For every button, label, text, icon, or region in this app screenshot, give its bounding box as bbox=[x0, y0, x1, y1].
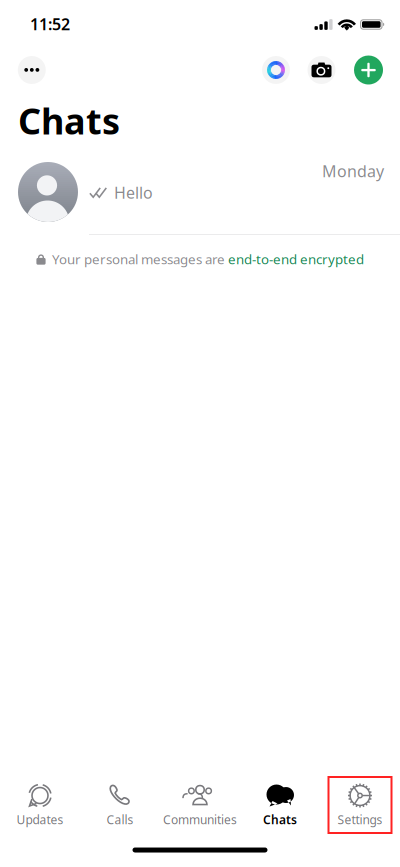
staticText: Your personal messages are bbox=[52, 250, 228, 268]
staticText: Monday bbox=[322, 160, 384, 182]
button[interactable]: Meta AI bbox=[259, 53, 293, 87]
staticText: end-to-end encrypted bbox=[228, 250, 364, 268]
button[interactable] bbox=[0, 145, 400, 234]
button[interactable]: Communities bbox=[160, 778, 240, 832]
staticText: 11:52 bbox=[30, 13, 70, 35]
button[interactable]: New chat bbox=[351, 53, 385, 87]
staticText: Updates bbox=[16, 811, 63, 827]
staticText: Chats bbox=[18, 97, 120, 144]
staticText: Settings bbox=[337, 811, 382, 827]
button[interactable]: Updates bbox=[0, 778, 80, 832]
staticText: Chats bbox=[263, 811, 297, 827]
staticText: Calls bbox=[106, 811, 133, 827]
button[interactable]: Calls bbox=[80, 778, 160, 832]
button[interactable]: Settings bbox=[320, 777, 400, 833]
button[interactable]: More options bbox=[15, 53, 49, 87]
button[interactable]: Camera bbox=[304, 53, 338, 87]
button[interactable]: Chats bbox=[240, 778, 320, 832]
staticText: Communities bbox=[163, 811, 237, 827]
staticText: Hello bbox=[114, 182, 153, 203]
